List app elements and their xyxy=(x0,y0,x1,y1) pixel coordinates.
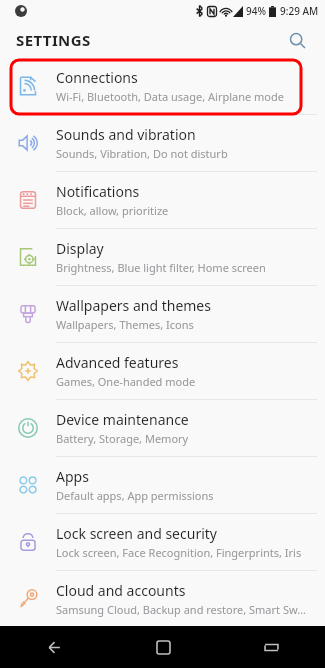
staticText: Default apps, App permissions xyxy=(56,488,214,503)
staticText: Display xyxy=(56,239,104,258)
staticText: Lock screen and security xyxy=(56,524,217,543)
staticText: Lock screen, Face Recognition, Fingerpri… xyxy=(56,545,302,560)
staticText: Wallpapers and themes xyxy=(56,296,211,315)
staticText: Block, allow, prioritize xyxy=(56,203,169,218)
staticText: Samsung Cloud, Backup and restore, Smart… xyxy=(56,602,306,617)
button[interactable]: Wallpapers and themes xyxy=(0,286,325,342)
staticText: Apps xyxy=(56,467,89,486)
button[interactable]: Device maintenance xyxy=(0,400,325,456)
button[interactable]: Notifications xyxy=(0,172,325,228)
button[interactable]: Advanced features xyxy=(0,343,325,399)
staticText: Battery, Storage, Memory xyxy=(56,431,189,446)
staticText: Cloud and accounts xyxy=(56,581,186,600)
staticText: Sounds and vibration xyxy=(56,125,196,144)
staticText: Wi-Fi, Bluetooth, Data usage, Airplane m… xyxy=(56,89,284,104)
staticText: Connections xyxy=(56,68,138,87)
staticText: Notifications xyxy=(56,182,140,201)
staticText: Device maintenance xyxy=(56,410,189,429)
staticText: Brightness, Blue light filter, Home scre… xyxy=(56,260,266,275)
button[interactable]: Back xyxy=(0,626,109,668)
staticText: Wallpapers, Themes, Icons xyxy=(56,317,194,332)
button[interactable]: Connections xyxy=(0,58,325,114)
staticText: 94% xyxy=(246,4,266,18)
staticText: Sounds, Vibration, Do not disturb xyxy=(56,146,228,161)
button[interactable]: Search xyxy=(281,24,313,56)
staticText: SETTINGS xyxy=(16,30,91,50)
staticText: 9:29 AM xyxy=(280,4,319,18)
button[interactable]: Display xyxy=(0,229,325,285)
button[interactable]: Cloud and accounts xyxy=(0,571,325,626)
staticText: Advanced features xyxy=(56,353,179,372)
button[interactable]: Lock screen and security xyxy=(0,514,325,570)
button[interactable]: Sounds and vibration xyxy=(0,115,325,171)
button[interactable]: Home xyxy=(109,626,217,668)
button[interactable]: Apps xyxy=(0,457,325,513)
button[interactable]: Recent apps xyxy=(217,626,325,668)
staticText: Games, One-handed mode xyxy=(56,374,196,389)
